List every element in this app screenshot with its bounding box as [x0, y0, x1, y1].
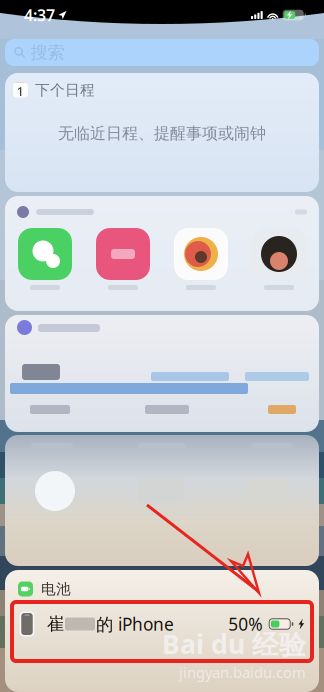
staticText: 下个日程: [35, 81, 95, 99]
button[interactable]: [5, 196, 319, 311]
button[interactable]: [5, 315, 319, 432]
staticText: 崔: [47, 613, 64, 635]
staticText: 的 iPhone: [96, 612, 174, 635]
staticText: Bai du 经验: [162, 626, 306, 662]
staticText: 4:37: [24, 4, 55, 26]
staticText: 搜索: [30, 42, 64, 63]
staticText: 电池: [41, 580, 71, 598]
button[interactable]: 崔: [5, 604, 319, 644]
staticText: 无临近日程、提醒事项或闹钟: [58, 124, 266, 143]
staticText: 1: [16, 82, 24, 100]
staticText: jingyan.baidu.com: [179, 662, 306, 682]
button[interactable]: [5, 435, 319, 566]
staticText: 50%: [228, 612, 262, 635]
button[interactable]: 1: [5, 73, 319, 192]
button[interactable]: 搜索: [5, 39, 319, 66]
